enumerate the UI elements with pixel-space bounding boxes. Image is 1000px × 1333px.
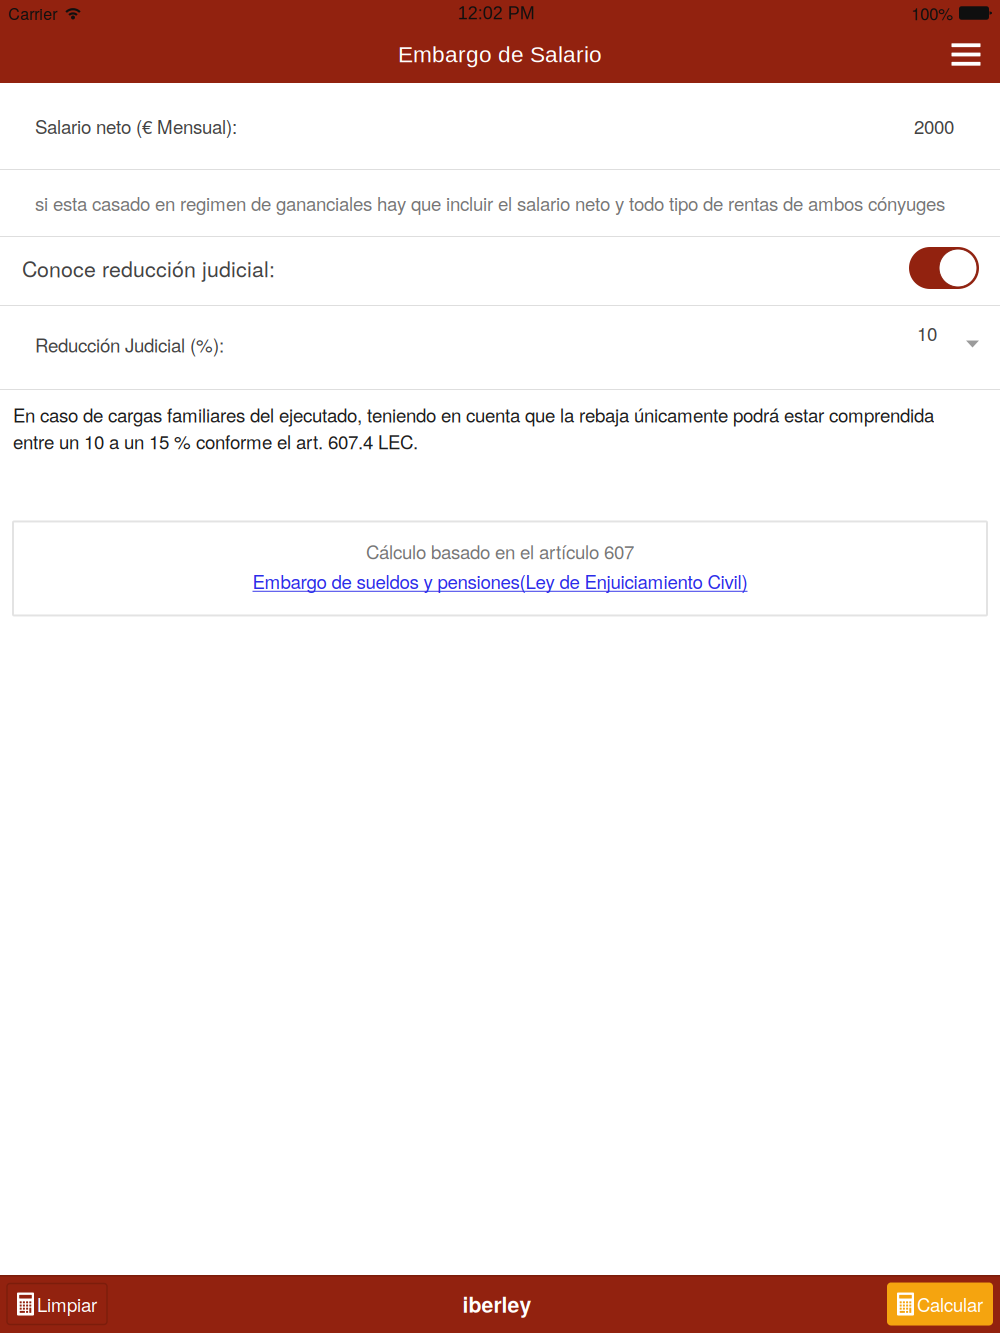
staticText: Salario neto (€ Mensual): <box>35 113 237 139</box>
staticText: si esta casado en regimen de gananciales… <box>35 190 945 216</box>
staticText: 100% <box>911 1 953 25</box>
staticText: Embargo de Salario <box>398 42 602 67</box>
staticText: En caso de cargas familiares del ejecuta… <box>13 401 934 454</box>
button[interactable]: Embargo de sueldos y pensiones(Ley de En… <box>252 567 747 594</box>
staticText: Limpiar <box>37 1291 97 1317</box>
button[interactable]: Salario neto (€ Mensual): <box>0 83 1000 169</box>
staticText: Embargo de sueldos y pensiones(Ley de En… <box>252 567 747 594</box>
staticText: 2000 <box>914 113 954 139</box>
staticText: 10 <box>917 319 937 346</box>
button[interactable]: Menu <box>938 29 994 79</box>
staticText: Carrier <box>8 1 57 24</box>
staticText: Cálculo basado en el artículo 607 <box>366 538 634 564</box>
button[interactable]: Conoce reducción judicial <box>909 247 979 289</box>
button[interactable]: Limpiar <box>7 1283 107 1324</box>
staticText: 12:02 PM <box>457 3 534 23</box>
staticText: iberley <box>462 1289 531 1319</box>
staticText: Calcular <box>917 1291 983 1317</box>
button[interactable]: Reducción Judicial (%): <box>0 306 1000 389</box>
button[interactable]: Calcular <box>887 1282 993 1325</box>
staticText: Conoce reducción judicial: <box>22 253 275 283</box>
staticText: Reducción Judicial (%): <box>35 331 224 358</box>
